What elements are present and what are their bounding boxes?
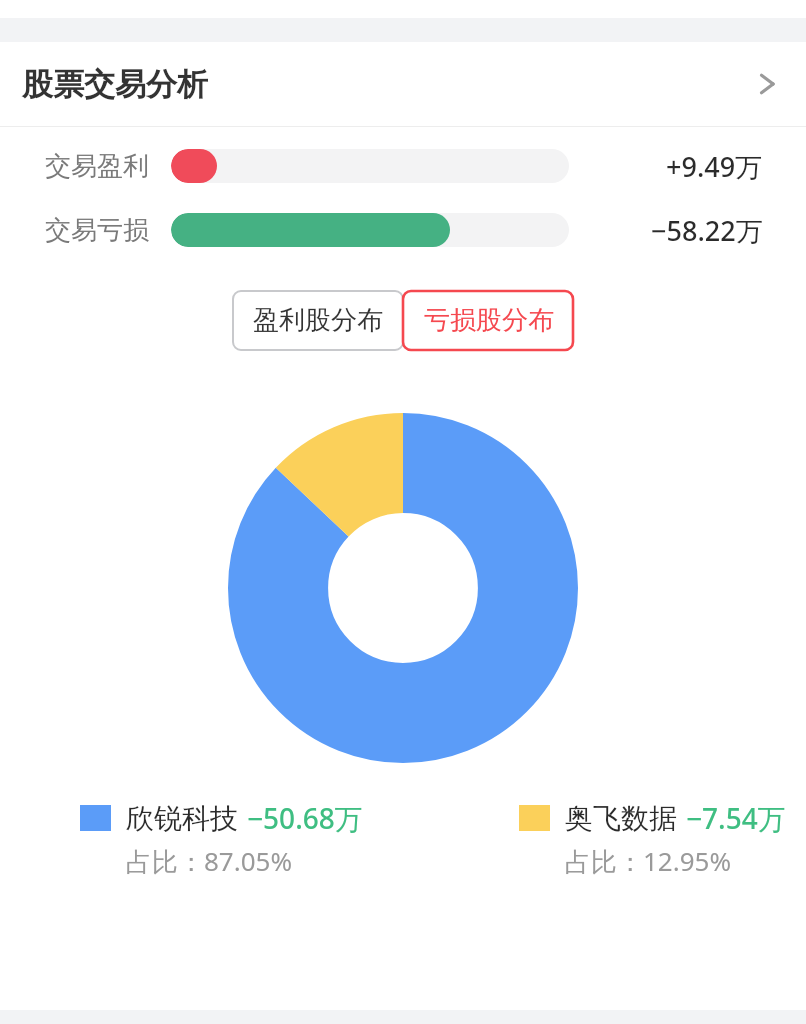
staticText: 盈利股分布 bbox=[253, 304, 383, 337]
staticText: 交易盈利 bbox=[45, 150, 149, 183]
staticText: −50.68万 bbox=[247, 799, 363, 837]
staticText: 奥飞数据 bbox=[565, 801, 677, 836]
staticText: 欣锐科技 bbox=[126, 801, 238, 836]
button[interactable]: 盈利股分布 bbox=[232, 290, 403, 351]
staticText: −7.54万 bbox=[686, 799, 786, 837]
button[interactable]: 股票交易分析 bbox=[0, 42, 806, 126]
staticText: −58.22万 bbox=[651, 212, 763, 249]
staticText: 亏损股分布 bbox=[424, 304, 554, 337]
staticText: 占比：12.95% bbox=[565, 843, 732, 879]
staticText: 股票交易分析 bbox=[22, 65, 208, 104]
button[interactable]: 欣锐科技 bbox=[0, 799, 403, 879]
staticText: 交易亏损 bbox=[45, 214, 149, 247]
button[interactable]: 亏损股分布 bbox=[403, 290, 574, 351]
button[interactable]: 奥飞数据 bbox=[403, 799, 806, 879]
staticText: +9.49万 bbox=[666, 148, 763, 185]
other: 查看详情 bbox=[756, 73, 778, 95]
staticText: 占比：87.05% bbox=[126, 843, 293, 879]
